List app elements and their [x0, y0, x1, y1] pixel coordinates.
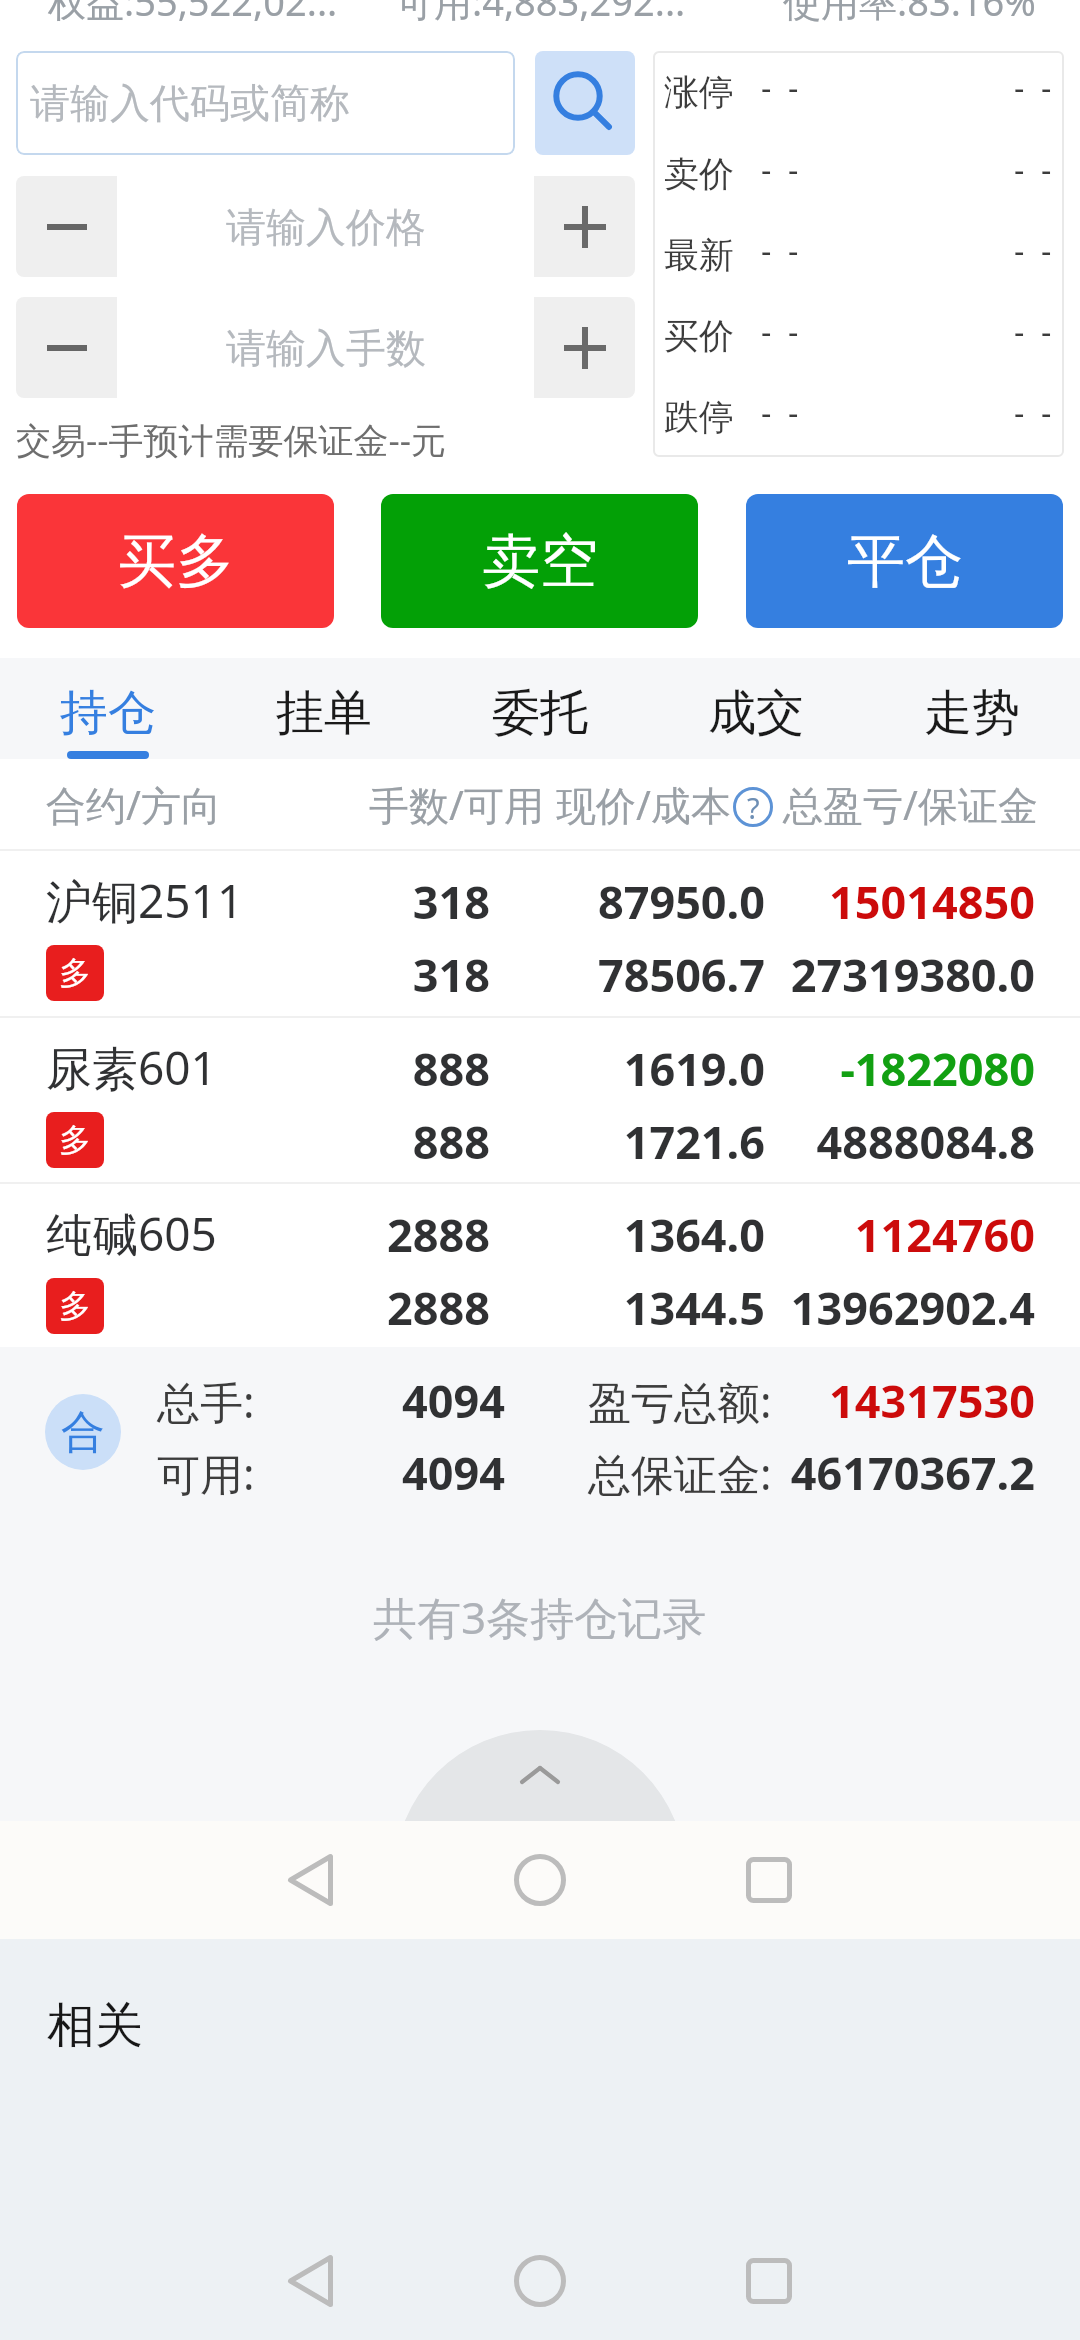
- staticText: 888: [70, 1111, 490, 1172]
- button[interactable]: 尿素601: [0, 1016, 1080, 1182]
- button[interactable]: 搜索: [535, 51, 635, 155]
- button[interactable]: 主页: [480, 2222, 600, 2340]
- staticText: 平仓: [847, 525, 963, 598]
- staticText: 2888: [70, 1204, 490, 1265]
- staticText: - -: [761, 310, 799, 354]
- staticText: - -: [1014, 391, 1052, 435]
- button[interactable]: 请输入价格: [117, 176, 534, 277]
- staticText: 合约/方向: [46, 777, 221, 832]
- button[interactable]: 委托: [432, 658, 648, 759]
- staticText: ?: [747, 788, 760, 827]
- staticText: 1619.0: [345, 1038, 765, 1099]
- staticText: - -: [761, 148, 799, 192]
- button[interactable]: 增加: [534, 176, 635, 277]
- staticText: 15014850: [615, 871, 1035, 932]
- staticText: 尿素601: [46, 1036, 217, 1099]
- staticText: 权益:55,522,02...: [48, 0, 338, 22]
- button[interactable]: 增加: [534, 297, 635, 398]
- staticText: 4888084.8: [615, 1111, 1035, 1172]
- staticText: 现价/成本: [556, 777, 731, 832]
- staticText: 888: [70, 1038, 490, 1099]
- staticText: 多: [59, 953, 91, 993]
- staticText: 318: [70, 871, 490, 932]
- staticText: 1364.0: [345, 1204, 765, 1265]
- staticText: 14317530: [615, 1370, 1035, 1431]
- staticText: 87950.0: [345, 871, 765, 932]
- button[interactable]: 减少: [16, 297, 117, 398]
- button[interactable]: 成交: [648, 658, 864, 759]
- staticText: 买价: [664, 314, 734, 358]
- button[interactable]: 最近任务: [709, 2222, 829, 2340]
- staticText: - -: [1014, 148, 1052, 192]
- staticText: 共有3条持仓记录: [373, 1587, 707, 1647]
- button[interactable]: 纯碱605: [0, 1182, 1080, 1348]
- button[interactable]: 沪铜2511: [0, 849, 1080, 1015]
- staticText: - -: [761, 229, 799, 273]
- staticText: 总保证金:: [588, 1444, 772, 1503]
- staticText: 最新: [664, 233, 734, 277]
- staticText: 走势: [924, 683, 1020, 743]
- staticText: 卖空: [482, 525, 598, 598]
- staticText: 跌停: [664, 395, 734, 439]
- button[interactable]: 返回: [250, 1821, 370, 1939]
- button[interactable]: 走势: [864, 658, 1080, 759]
- button[interactable]: 相关: [0, 1979, 1080, 2069]
- button[interactable]: 返回: [250, 2222, 370, 2340]
- button[interactable]: 买多: [17, 494, 334, 628]
- staticText: 交易--手预计需要保证金--元: [16, 416, 447, 464]
- staticText: 请输入代码或简称: [30, 78, 350, 128]
- staticText: 相关: [47, 1996, 143, 2056]
- button[interactable]: 回到顶部: [394, 1730, 686, 2022]
- staticText: 卖价: [664, 152, 734, 196]
- staticText: 27319380.0: [615, 944, 1035, 1005]
- staticText: 请输入手数: [226, 323, 426, 373]
- staticText: 成交: [708, 683, 804, 743]
- button[interactable]: 减少: [16, 176, 117, 277]
- staticText: 挂单: [276, 683, 372, 743]
- staticText: 2888: [70, 1277, 490, 1338]
- staticText: 可用:4,883,292...: [396, 0, 686, 22]
- staticText: 买多: [118, 525, 234, 598]
- staticText: 持仓: [60, 683, 156, 743]
- staticText: 使用率:83.16%: [783, 0, 1036, 22]
- staticText: 请输入价格: [226, 202, 426, 252]
- staticText: 多: [59, 1120, 91, 1160]
- staticText: 总手:: [157, 1372, 255, 1431]
- button[interactable]: 挂单: [216, 658, 432, 759]
- staticText: 涨停: [664, 70, 734, 114]
- staticText: 合: [61, 1405, 105, 1460]
- staticText: 多: [59, 1286, 91, 1326]
- staticText: - -: [1014, 310, 1052, 354]
- staticText: 318: [70, 944, 490, 1005]
- staticText: 手数/可用: [369, 777, 544, 832]
- staticText: - -: [761, 391, 799, 435]
- button[interactable]: 说明: [731, 785, 775, 829]
- staticText: 沪铜2511: [46, 869, 244, 932]
- staticText: - -: [1014, 229, 1052, 273]
- staticText: 纯碱605: [46, 1202, 217, 1265]
- button[interactable]: 请输入代码或简称: [16, 51, 515, 155]
- staticText: -1822080: [615, 1038, 1035, 1099]
- staticText: 46170367.2: [615, 1442, 1035, 1503]
- staticText: 13962902.4: [615, 1277, 1035, 1338]
- staticText: 总盈亏/保证金: [783, 777, 1038, 832]
- button[interactable]: 卖空: [381, 494, 698, 628]
- staticText: - -: [1014, 66, 1052, 110]
- staticText: 4094: [85, 1442, 505, 1503]
- button[interactable]: 平仓: [746, 494, 1063, 628]
- staticText: 盈亏总额:: [588, 1372, 772, 1431]
- staticText: 1124760: [615, 1204, 1035, 1265]
- button[interactable]: 最近任务: [709, 1821, 829, 1939]
- staticText: 1721.6: [345, 1111, 765, 1172]
- staticText: 4094: [85, 1370, 505, 1431]
- staticText: 78506.7: [345, 944, 765, 1005]
- staticText: 1344.5: [345, 1277, 765, 1338]
- button[interactable]: 主页: [480, 1821, 600, 1939]
- staticText: - -: [761, 66, 799, 110]
- staticText: 委托: [492, 683, 588, 743]
- button[interactable]: 请输入手数: [117, 297, 534, 398]
- button[interactable]: 持仓: [0, 658, 216, 759]
- staticText: 可用:: [157, 1444, 255, 1503]
